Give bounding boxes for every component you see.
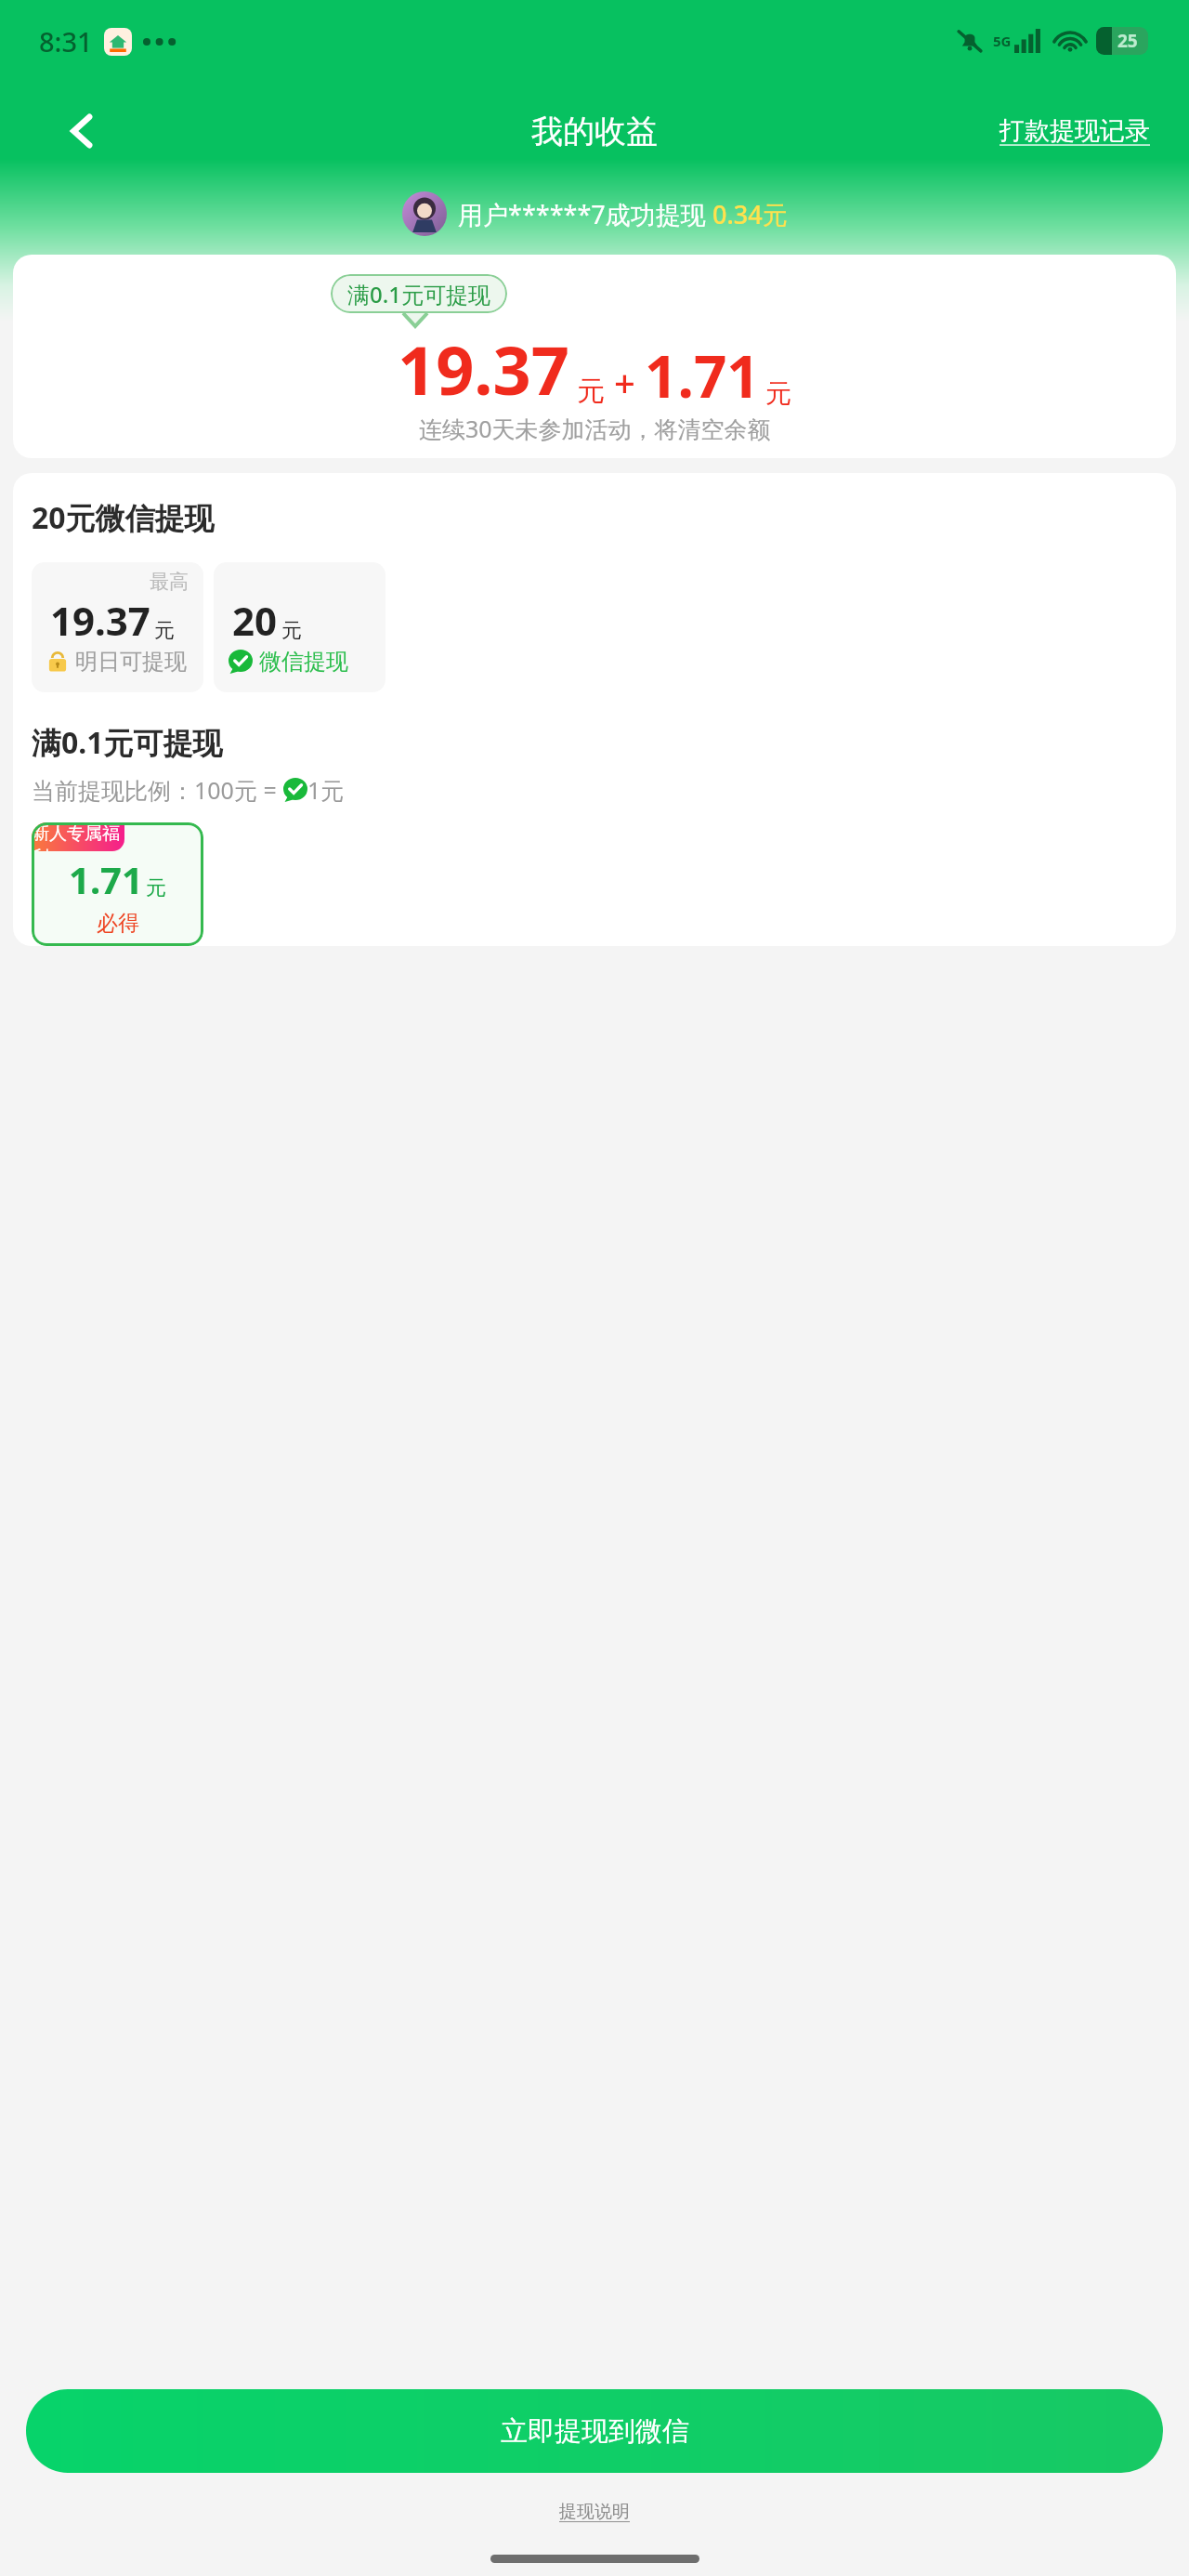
staticText: 必得 [97,910,139,937]
staticText: 新人专属福利 [32,822,124,851]
button[interactable]: 最高 [32,562,203,692]
staticText: 满0.1元可提现 [347,279,490,309]
staticText: 19.37 [50,594,150,647]
staticText: 连续30天未参加活动，将清空余额 [419,413,771,444]
button[interactable]: 立即提现到微信 [26,2389,1163,2473]
button[interactable]: 提现说明 [546,2497,643,2527]
button[interactable]: Back [56,104,110,158]
staticText: 0.34元 [712,197,788,231]
staticText: 元 [146,875,166,901]
staticText: + [614,357,635,407]
staticText: 1.71 [645,336,760,414]
staticText: 用户******7成功提现 [458,197,712,231]
staticText: 元 [577,374,605,409]
staticText: 19.37 [398,323,569,414]
staticText: 微信提现 [259,648,348,676]
staticText: 25 [1117,29,1138,53]
staticText: 满0.1元可提现 [32,722,223,763]
button[interactable]: 20 [214,562,385,692]
staticText: 最高 [150,570,189,594]
staticText: 打款提现记录 [1000,115,1150,147]
staticText: 当前提现比例：100元 = [32,774,283,806]
staticText: 20元微信提现 [32,497,215,538]
staticText: 提现说明 [559,2501,630,2523]
staticText: 元 [281,618,302,644]
staticText: 元 [765,377,791,410]
staticText: 20 [232,594,278,647]
staticText: 5G [993,32,1012,50]
staticText: 1.71 [69,854,143,904]
staticText: 我的收益 [531,112,658,151]
button[interactable]: 打款提现记录 [994,108,1156,154]
staticText: 8:31 [39,23,93,59]
staticText: 明日可提现 [75,648,187,676]
staticText: 1元 [307,774,345,806]
staticText: 立即提现到微信 [501,2414,689,2449]
button[interactable]: 新人专属福利 [32,822,203,946]
staticText: 元 [154,618,175,644]
